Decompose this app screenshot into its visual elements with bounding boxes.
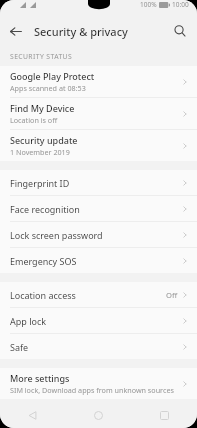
staticText: Lock screen password: [10, 229, 103, 241]
staticText: More settings: [10, 372, 70, 384]
button[interactable]: App lock: [0, 308, 197, 334]
staticText: App lock: [10, 315, 47, 327]
button[interactable]: Search: [165, 16, 195, 46]
button[interactable]: Google Play Protect: [0, 66, 197, 98]
staticText: Location access: [10, 289, 76, 301]
button[interactable]: Fingerprint ID: [0, 170, 197, 196]
staticText: Apps scanned at 08:53: [10, 83, 86, 93]
button[interactable]: Location access: [0, 282, 197, 308]
staticText: Google Play Protect: [10, 70, 95, 82]
staticText: Security & privacy: [34, 24, 128, 39]
button[interactable]: Safe: [0, 334, 197, 359]
staticText: 1 November 2019: [10, 147, 70, 157]
button[interactable]: Find My Device: [0, 98, 197, 130]
staticText: Fingerprint ID: [10, 177, 70, 189]
button[interactable]: Security update: [0, 130, 197, 161]
staticText: 10:00: [172, 0, 189, 9]
staticText: Safe: [10, 341, 29, 353]
staticText: Security update: [10, 134, 78, 146]
staticText: 100%: [140, 0, 157, 9]
staticText: Face recognition: [10, 203, 80, 215]
button[interactable]: More settings: [0, 368, 197, 399]
staticText: SECURITY STATUS: [10, 52, 73, 61]
button[interactable]: Lock screen password: [0, 222, 197, 248]
staticText: SIM lock, Download apps from unknown sou…: [10, 385, 174, 395]
staticText: Emergency SOS: [10, 255, 77, 267]
staticText: Off: [166, 290, 178, 300]
button[interactable]: Face recognition: [0, 196, 197, 222]
staticText: Find My Device: [10, 102, 75, 114]
button[interactable]: Recent apps: [131, 402, 197, 428]
staticText: Location is off: [10, 115, 58, 125]
button[interactable]: Emergency SOS: [0, 248, 197, 273]
button[interactable]: Back: [0, 402, 65, 428]
button[interactable]: Back: [0, 16, 30, 46]
